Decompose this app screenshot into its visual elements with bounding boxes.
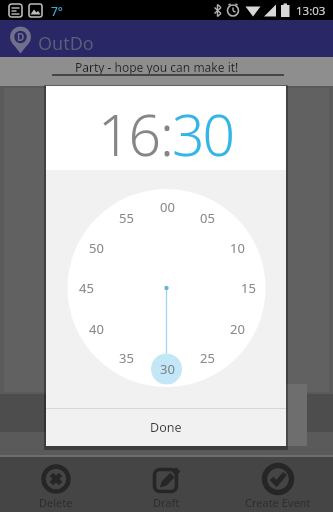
button[interactable]: 30 [172,95,234,170]
staticText: 05 [200,209,215,227]
button[interactable]: Create Event [222,457,333,512]
staticText: D [17,30,25,44]
button[interactable]: Delete [0,457,111,512]
staticText: 40 [89,320,104,338]
staticText: 30 [172,95,234,170]
button[interactable]: Draft [111,457,222,512]
staticText: Draft [153,495,180,510]
staticText: 10 [230,239,245,257]
staticText: Create Event [245,495,311,510]
staticText: 30 [160,360,175,378]
staticText: Party - hope you can make it! [75,59,239,75]
staticText: 13:03 [296,3,326,19]
staticText: OutDo [38,31,94,54]
staticText: 16 [98,95,160,170]
staticText: 35 [119,349,134,367]
staticText: Done [150,419,182,436]
button[interactable]: Done [46,409,286,446]
staticText: : [160,95,172,170]
staticText: 20 [230,320,245,338]
staticText: Delete [39,495,73,510]
staticText: 15 [241,279,256,297]
button[interactable]: 16 [98,95,160,170]
staticText: 00 [160,198,175,216]
staticText: 25 [200,349,215,367]
staticText: 50 [89,239,104,257]
staticText: 55 [119,209,134,227]
staticText: 7° [51,3,64,19]
staticText: 45 [79,279,94,297]
